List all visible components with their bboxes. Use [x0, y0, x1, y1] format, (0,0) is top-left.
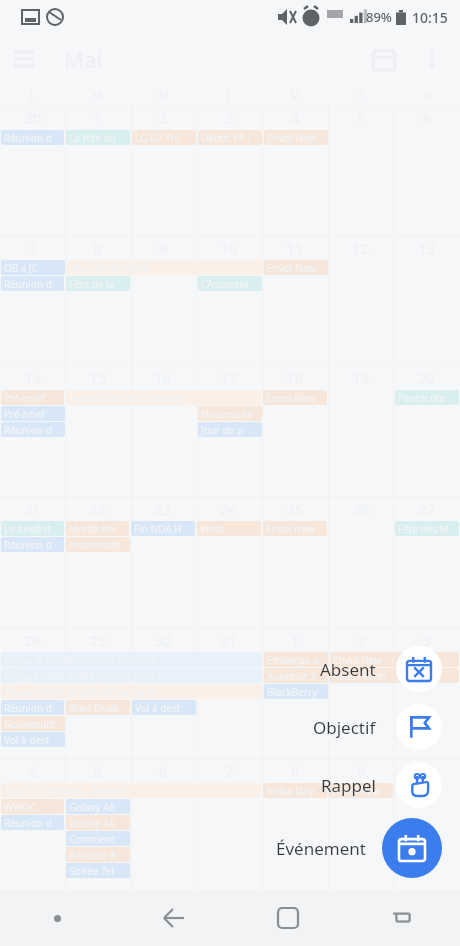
button[interactable]: Galaxy A6 [66, 799, 130, 814]
button[interactable]: Fin NDA H [131, 521, 195, 536]
button[interactable]: Réunion d [1, 422, 65, 437]
button[interactable]: Debut VP i [198, 130, 262, 145]
button[interactable]: Nouveauté [198, 406, 262, 421]
button[interactable]: Nouveauté [1, 716, 65, 731]
button[interactable]: Pré-brief [1, 406, 65, 421]
button[interactable]: Absent [320, 646, 442, 692]
button[interactable]: Home [230, 890, 345, 946]
button[interactable]: Réunion d [1, 276, 64, 291]
button[interactable]: West [197, 521, 261, 536]
button[interactable]: Soirée Tel [66, 863, 130, 878]
button[interactable]: Brief Ouak [66, 700, 130, 715]
button[interactable]: Honor/OnePlus Londres [66, 390, 261, 405]
button[interactable]: LG G7 Thi [132, 130, 196, 145]
button[interactable]: Pré-brief [1, 390, 64, 405]
button[interactable]: Jour de p [198, 422, 262, 437]
button[interactable]: Envoi New [263, 390, 327, 405]
button[interactable]: Nvidia Shi [66, 521, 129, 536]
button[interactable]: Envoi New [330, 652, 459, 667]
button[interactable]: Google I/O 2018 [67, 260, 262, 275]
button[interactable]: Envoi New [263, 521, 327, 536]
button[interactable]: Nokia Day [263, 783, 327, 798]
button[interactable]: Pentecôte [395, 390, 459, 405]
button[interactable]: Voyage HMD Russie (Omar) pour [1, 684, 262, 699]
button[interactable]: Réunion d [1, 815, 64, 830]
button[interactable]: Fête des M [395, 521, 459, 536]
button[interactable]: Réunion d [1, 537, 64, 552]
button[interactable]: Vol à dest [132, 700, 196, 715]
button[interactable]: WWDC [1, 799, 64, 814]
button[interactable]: Réunion d [1, 130, 64, 145]
button[interactable]: Comment [66, 831, 130, 846]
button[interactable]: Objectif [313, 704, 442, 750]
button[interactable]: L'Ascensio [198, 276, 262, 291]
button[interactable]: Recent apps [345, 890, 460, 946]
button[interactable]: Rappel [321, 762, 442, 808]
button[interactable]: La fête du [66, 130, 130, 145]
button[interactable]: BlackBerry [264, 684, 328, 699]
button[interactable]: Réunion d [1, 700, 64, 715]
button[interactable]: Envoi New [264, 260, 328, 275]
button[interactable]: Annonce X [264, 668, 328, 683]
button[interactable]: Indicator [0, 890, 115, 946]
button[interactable]: Le lundi d [1, 521, 64, 536]
button[interactable]: Envoi New [264, 130, 328, 145]
button[interactable]: Back [115, 890, 230, 946]
button[interactable]: Amazon A [66, 847, 130, 862]
button[interactable]: 10 [418, 761, 436, 781]
button[interactable]: Fête de la [66, 276, 130, 291]
button[interactable]: 3 [423, 630, 432, 650]
button[interactable]: Galaxy A6 [66, 815, 130, 830]
button[interactable]: Envoi New [329, 783, 393, 798]
button[interactable]: Nouveauté [66, 537, 130, 552]
button[interactable]: OB x JC [1, 260, 65, 275]
button[interactable]: Asus / Com [330, 668, 459, 683]
button[interactable]: Asus / Computex - Taiwan [1, 783, 261, 798]
